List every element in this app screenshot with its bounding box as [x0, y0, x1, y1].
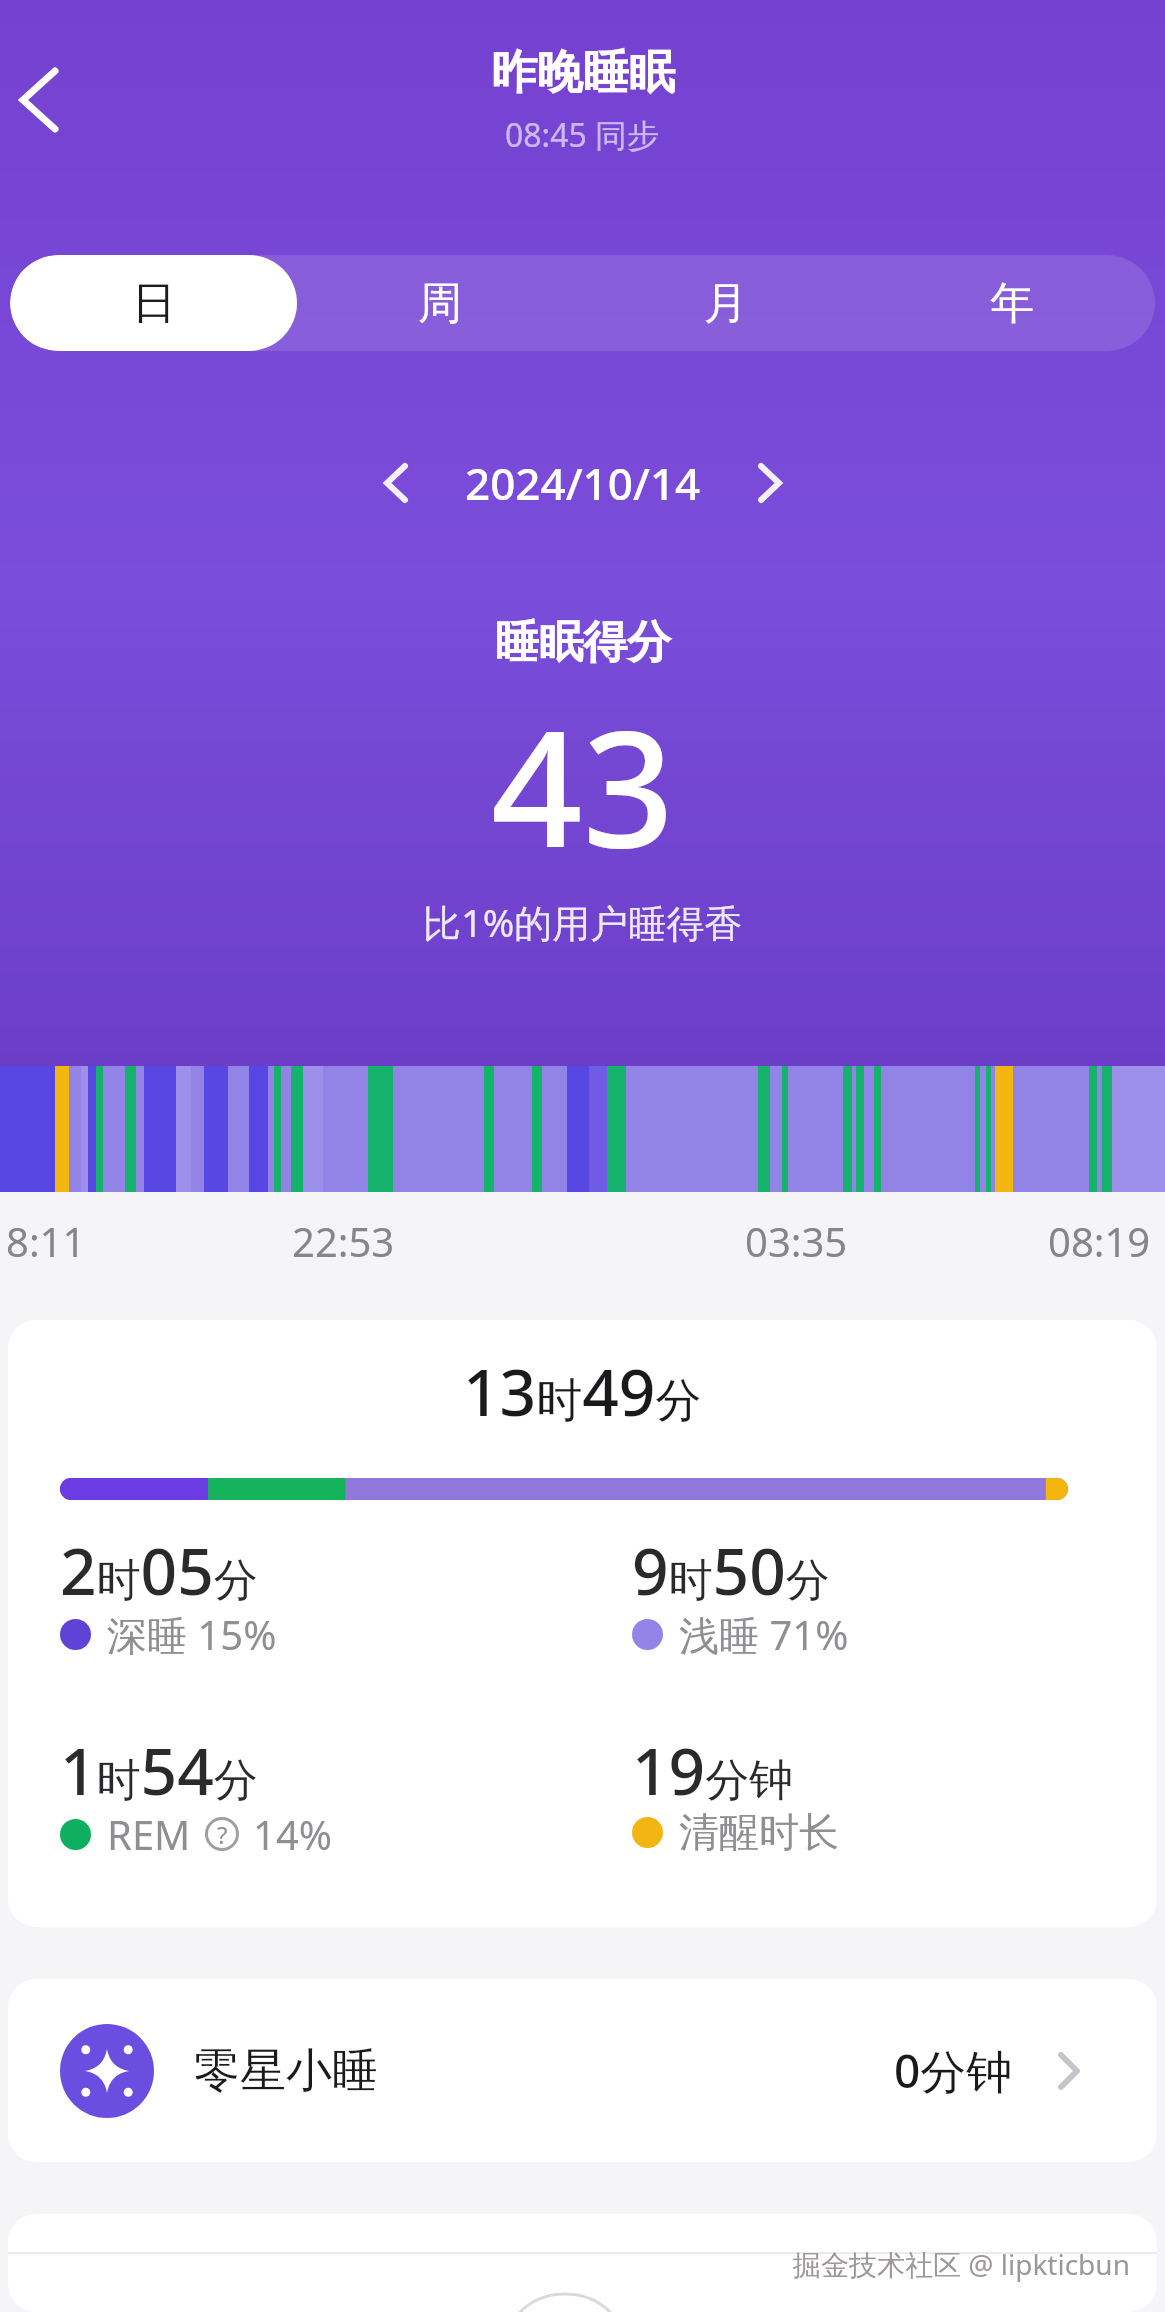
button[interactable]: 零星小睡 [8, 1979, 1157, 2162]
staticText: 08:45 同步 [505, 113, 660, 157]
staticText: 03:35 [745, 1214, 848, 1268]
staticText: 13时49分 [463, 1348, 702, 1435]
button[interactable]: 日 [10, 255, 297, 351]
button[interactable]: 月 [583, 255, 869, 351]
staticText: 2024/10/14 [465, 453, 701, 513]
staticText: 深睡 15% [107, 1607, 277, 1662]
button[interactable] [365, 453, 425, 513]
staticText: 睡眠得分 [495, 615, 671, 670]
staticText: 14% [253, 1807, 332, 1861]
staticText: 昨晚睡眠 [491, 44, 675, 102]
staticText: 日 [132, 276, 176, 331]
staticText: REM [107, 1807, 191, 1861]
staticText: 比1%的用户睡得香 [423, 896, 743, 948]
staticText: 8:11 [6, 1214, 86, 1268]
staticText: 掘金技术社区 @ lipkticbun [793, 2245, 1130, 2283]
staticText: 22:53 [292, 1214, 395, 1268]
staticText: 19分钟 [632, 1727, 794, 1814]
staticText: 43 [491, 676, 675, 894]
staticText: 0分钟 [894, 2039, 1013, 2102]
button[interactable]: 年 [869, 255, 1155, 351]
staticText: 1时54分 [60, 1727, 258, 1814]
staticText: 08:19 [1048, 1214, 1151, 1268]
staticText: 浅睡 71% [679, 1607, 849, 1662]
staticText: ? [217, 1818, 228, 1851]
staticText: 2时05分 [60, 1527, 258, 1614]
staticText: 零星小睡 [194, 2042, 378, 2100]
staticText: 月 [704, 276, 748, 331]
staticText: 9时50分 [632, 1527, 830, 1614]
staticText: 清醒时长 [679, 1807, 839, 1857]
button[interactable] [8, 70, 68, 130]
button[interactable] [741, 453, 801, 513]
button[interactable]: 周 [297, 255, 583, 351]
staticText: 周 [418, 276, 462, 331]
staticText: 年 [990, 276, 1034, 331]
